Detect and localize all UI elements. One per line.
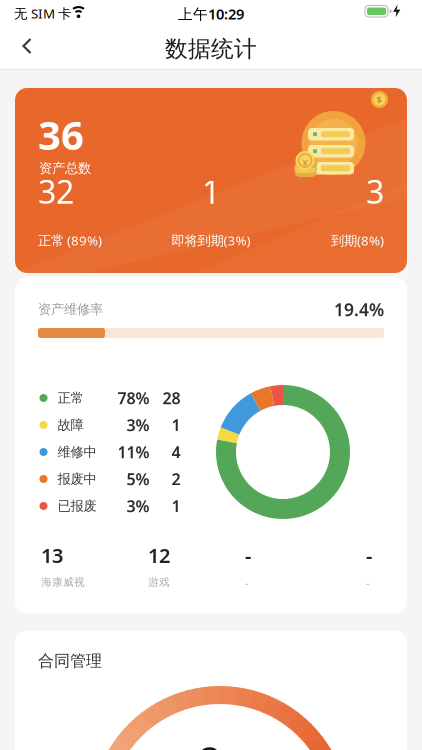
staticText: ¥ (302, 156, 307, 168)
staticText: 2 (199, 735, 220, 750)
staticText: 3 (366, 170, 384, 212)
staticText: 78% (117, 387, 149, 409)
staticText: 合同管理 (38, 651, 102, 671)
staticText: 无 SIM 卡 (14, 4, 71, 22)
staticText: $ (376, 93, 381, 106)
staticText: 1 (171, 414, 180, 436)
staticText: 海康威视 (41, 576, 85, 589)
staticText: 13 (41, 542, 63, 569)
staticText: 报废中 (57, 471, 96, 487)
staticText: 维修中 (57, 444, 96, 460)
staticText: 2 (171, 468, 180, 490)
staticText: 上午10:29 (178, 4, 244, 23)
staticText: 3% (126, 414, 149, 436)
staticText: - (245, 576, 248, 590)
staticText: 数据统计 (165, 35, 257, 63)
button[interactable]: Back (10, 30, 54, 63)
staticText: 3% (126, 495, 149, 517)
staticText: 1 (202, 170, 220, 212)
staticText: 4 (171, 441, 180, 463)
staticText: 故障 (57, 417, 83, 433)
staticText: 32 (38, 170, 74, 212)
staticText: - (366, 576, 369, 590)
staticText: 5% (126, 468, 149, 490)
staticText: - (366, 542, 372, 569)
staticText: 19.4% (334, 298, 384, 321)
staticText: 11% (117, 441, 149, 463)
staticText: 12 (148, 542, 170, 569)
staticText: 游戏 (148, 576, 170, 589)
staticText: 36 (38, 108, 84, 161)
staticText: 到期(8%) (331, 231, 384, 249)
staticText: 正常 (57, 390, 83, 406)
staticText: - (245, 542, 251, 569)
staticText: 即将到期(3%) (171, 231, 250, 249)
staticText: 正常 (89%) (38, 231, 102, 249)
staticText: 28 (162, 387, 180, 409)
staticText: 已报废 (57, 498, 96, 514)
staticText: 资产维修率 (38, 301, 103, 317)
staticText: 资产总数 (39, 160, 91, 176)
staticText: 1 (171, 495, 180, 517)
